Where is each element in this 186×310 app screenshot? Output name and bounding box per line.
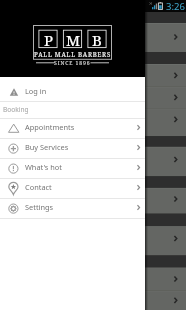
staticText: Appointments	[25, 122, 75, 132]
staticText: Booking	[3, 105, 29, 114]
staticText: What's hot	[25, 162, 63, 172]
button[interactable]: Contact	[0, 179, 145, 198]
staticText: M	[66, 30, 81, 47]
staticText: P	[44, 30, 54, 47]
staticText: SINCE 1896	[54, 60, 91, 67]
staticText: Log in	[25, 86, 47, 96]
button[interactable]: Settings	[0, 199, 145, 218]
button[interactable]: Appointments	[0, 119, 145, 138]
staticText: B	[92, 30, 102, 47]
staticText: 3:26	[166, 0, 185, 12]
staticText: Contact	[25, 182, 52, 192]
staticText: PALL MALL BARBERS	[34, 50, 112, 58]
button[interactable]: Buy Services	[0, 139, 145, 158]
staticText: Buy Services	[25, 142, 69, 152]
button[interactable]: Log in	[0, 77, 145, 101]
staticText: Settings	[25, 202, 54, 212]
button[interactable]: What's hot	[0, 159, 145, 178]
